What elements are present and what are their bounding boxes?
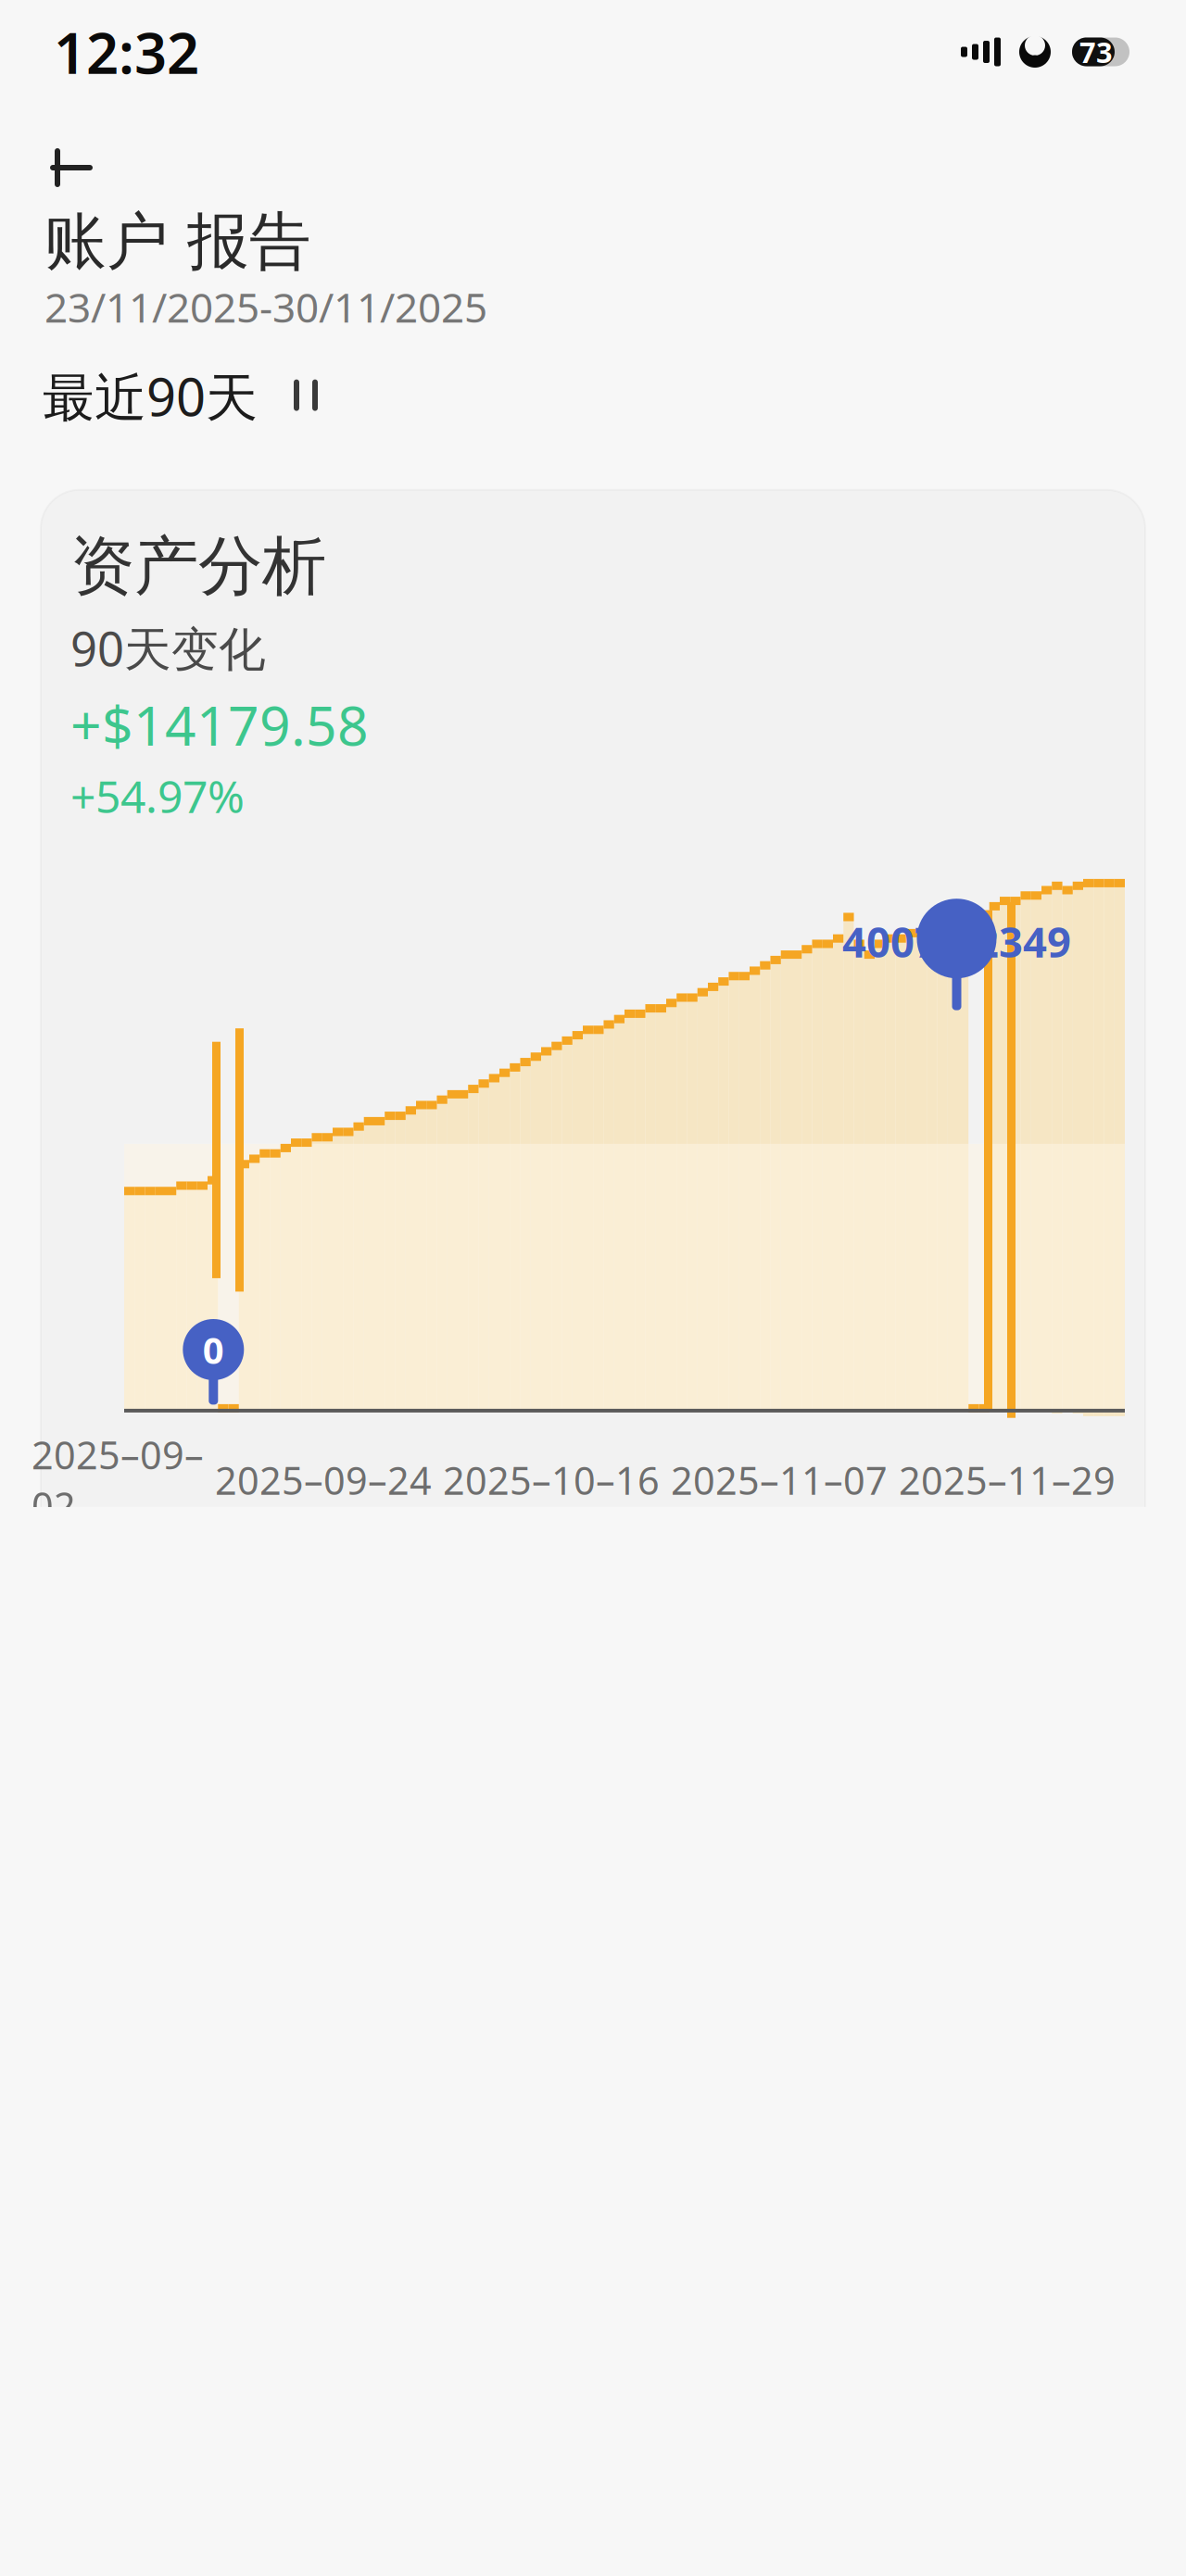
staticText: 12:32 (54, 14, 199, 90)
staticText: 40070.2349 (842, 913, 1071, 969)
staticText: 2025–11–07 (671, 1455, 888, 1505)
button[interactable]: Back (24, 132, 119, 204)
staticText: 90天变化 (70, 617, 266, 679)
staticText: 最近90天 (43, 362, 258, 431)
staticText: 0 (203, 1325, 224, 1374)
staticText: 2025–09–24 (215, 1455, 432, 1505)
staticText: +$14179.58 (70, 688, 369, 761)
staticText: 23/11/2025-30/11/2025 (44, 280, 487, 334)
button[interactable]: 最近90天 (43, 354, 332, 438)
staticText: 2025–11–29 (899, 1455, 1116, 1505)
staticText: 2025–10–16 (443, 1455, 660, 1505)
staticText: 资产分析 (70, 527, 326, 606)
staticText: 2025–09–02 (32, 1429, 204, 1531)
staticText: +54.97% (70, 766, 245, 825)
staticText: 账户 报告 (44, 204, 311, 280)
staticText: 73 (1079, 33, 1113, 71)
